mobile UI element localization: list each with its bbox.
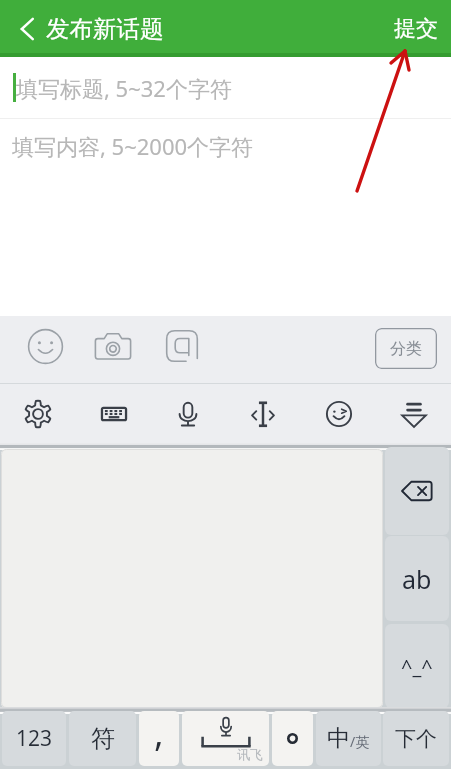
button[interactable]: ，	[139, 711, 179, 766]
staticText: 中	[327, 724, 350, 753]
button[interactable]: Settings	[16, 392, 60, 436]
button[interactable]: Back	[0, 0, 46, 53]
button[interactable]: Camera	[91, 325, 135, 369]
button[interactable]: Delete	[385, 447, 449, 535]
staticText: 提交	[394, 15, 438, 43]
button[interactable]: Emoji	[23, 324, 67, 368]
staticText: 讯飞	[237, 746, 263, 762]
button[interactable]: Space	[182, 711, 269, 766]
button[interactable]: 。	[272, 711, 313, 766]
button[interactable]: 下个	[383, 711, 449, 766]
button[interactable]: 符	[69, 711, 136, 766]
staticText: 符	[91, 724, 115, 754]
button[interactable]: Cursor	[241, 392, 285, 436]
staticText: /英	[350, 732, 370, 751]
button[interactable]: Keyboard	[92, 392, 136, 436]
staticText: ab	[402, 562, 432, 596]
button[interactable]: 中英切换	[316, 711, 381, 766]
staticText: 填写标题, 5~32个字符	[16, 73, 232, 103]
staticText: 下个	[395, 726, 437, 752]
button[interactable]: Voice	[166, 392, 210, 436]
staticText: 分类	[390, 339, 422, 359]
button[interactable]: 123	[2, 711, 66, 766]
button[interactable]: 分类	[375, 328, 437, 369]
button[interactable]: 提交	[378, 0, 451, 53]
button[interactable]: ^_^	[385, 624, 449, 708]
staticText: 填写内容, 5~2000个字符	[12, 131, 254, 161]
staticText: 发布新话题	[46, 14, 164, 44]
button[interactable]: Mention	[160, 324, 204, 368]
button[interactable]: Hide keyboard	[392, 392, 436, 436]
button[interactable]: Emoji	[317, 392, 361, 436]
staticText: ,	[154, 711, 164, 757]
staticText: ^_^	[401, 653, 433, 680]
button[interactable]: ab	[385, 536, 449, 621]
staticText: 123	[16, 724, 53, 753]
